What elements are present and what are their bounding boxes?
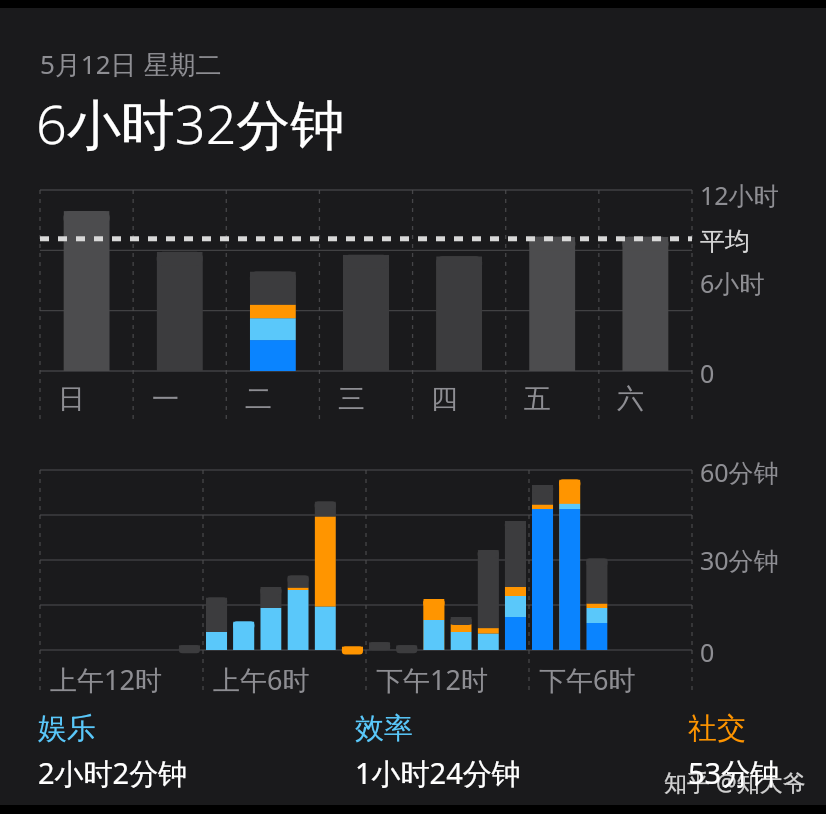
staticText: 上午12时 bbox=[50, 661, 162, 698]
staticText: 12小时 bbox=[700, 178, 779, 212]
button[interactable]: 社交 bbox=[688, 710, 780, 793]
staticText: 效率 bbox=[355, 710, 413, 747]
staticText: 6小时 bbox=[700, 266, 765, 300]
staticText: 下午12时 bbox=[376, 661, 488, 698]
staticText: 娱乐 bbox=[38, 710, 96, 747]
staticText: 五 bbox=[524, 382, 551, 416]
staticText: 2小时2分钟 bbox=[38, 753, 188, 793]
staticText: 知乎 @知大爷 bbox=[664, 766, 806, 797]
staticText: 三 bbox=[338, 382, 365, 416]
staticText: 四 bbox=[431, 382, 458, 416]
staticText: 平均 bbox=[700, 226, 750, 257]
staticText: 30分钟 bbox=[700, 543, 779, 577]
staticText: 社交 bbox=[688, 710, 746, 747]
button[interactable]: 效率 bbox=[355, 710, 521, 793]
staticText: 0 bbox=[700, 635, 715, 669]
button[interactable]: Hourly screen time chart bbox=[0, 463, 826, 653]
button[interactable]: Weekly screen time chart bbox=[0, 174, 826, 419]
staticText: 下午6时 bbox=[539, 661, 636, 698]
staticText: 6小时32分钟 bbox=[36, 86, 345, 160]
staticText: 二 bbox=[245, 382, 272, 416]
staticText: 一 bbox=[152, 382, 179, 416]
staticText: 60分钟 bbox=[700, 455, 779, 489]
button[interactable]: 娱乐 bbox=[38, 710, 188, 793]
staticText: 六 bbox=[617, 382, 644, 416]
staticText: 日 bbox=[58, 382, 85, 416]
staticText: 0 bbox=[700, 356, 715, 390]
staticText: 5月12日 星期二 bbox=[40, 46, 222, 82]
staticText: 上午6时 bbox=[213, 661, 310, 698]
staticText: 1小时24分钟 bbox=[355, 753, 521, 793]
staticText: 53分钟 bbox=[688, 753, 780, 793]
